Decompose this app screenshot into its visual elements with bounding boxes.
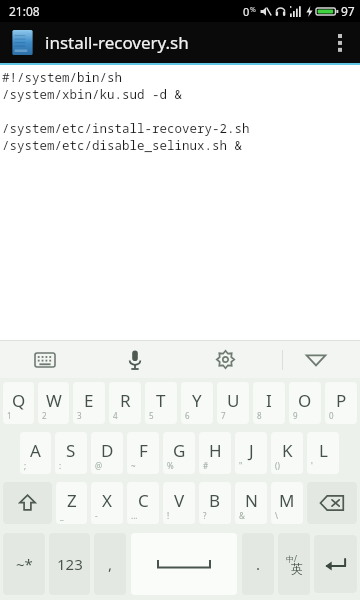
button[interactable]: Z: [56, 482, 87, 524]
button[interactable]: D: [91, 432, 123, 474]
button[interactable]: R: [109, 382, 141, 424]
staticText: 21:08: [9, 3, 40, 19]
staticText: L: [319, 439, 328, 462]
staticText: .: [256, 554, 261, 574]
button[interactable]: O: [289, 382, 321, 424]
staticText: P: [336, 389, 347, 412]
button[interactable]: More options: [320, 22, 360, 63]
staticText: U: [227, 389, 240, 412]
staticText: 9: [293, 410, 298, 421]
staticText: /system/etc/disable_selinux.sh &: [2, 137, 243, 154]
staticText: #!/system/bin/sh: [2, 69, 123, 86]
staticText: install-recovery.sh: [45, 31, 189, 54]
staticText: ?: [203, 510, 207, 521]
staticText: !: [167, 510, 170, 521]
staticText: -: [95, 510, 98, 521]
staticText: ...: [131, 510, 138, 521]
staticText: 1: [7, 410, 12, 421]
staticText: 7: [221, 410, 226, 421]
button[interactable]: Q: [3, 382, 34, 424]
button[interactable]: H: [199, 432, 231, 474]
button[interactable]: G: [163, 432, 195, 474]
staticText: (): [275, 460, 280, 471]
button[interactable]: T: [145, 382, 177, 424]
staticText: ~*: [16, 554, 33, 574]
button[interactable]: Keyboard layout: [0, 341, 90, 378]
button[interactable]: C: [127, 482, 159, 524]
staticText: 5: [149, 410, 154, 421]
staticText: ,: [108, 554, 113, 574]
button[interactable]: Backspace: [307, 482, 357, 524]
button[interactable]: M: [271, 482, 303, 524]
button[interactable]: E: [73, 382, 105, 424]
button[interactable]: Shift: [3, 482, 52, 524]
staticText: D: [101, 439, 114, 462]
button[interactable]: .: [242, 533, 274, 595]
staticText: T: [156, 389, 166, 412]
button[interactable]: 中/: [278, 533, 310, 595]
button[interactable]: Settings: [180, 341, 270, 378]
staticText: 123: [57, 554, 83, 574]
button[interactable]: ~*: [3, 533, 45, 595]
staticText: I: [266, 389, 272, 412]
button[interactable]: Enter: [314, 535, 357, 593]
staticText: S: [66, 439, 76, 462]
staticText: J: [249, 439, 254, 462]
staticText: 8: [257, 410, 262, 421]
button[interactable]: J: [235, 432, 267, 474]
staticText: 0: [243, 4, 250, 19]
staticText: Y: [192, 389, 202, 412]
button[interactable]: Voice input: [90, 341, 180, 378]
staticText: ;: [24, 460, 27, 471]
staticText: &: [239, 510, 245, 521]
staticText: V: [174, 489, 185, 512]
button[interactable]: I: [253, 382, 285, 424]
button[interactable]: ,: [94, 533, 126, 595]
staticText: 中/: [286, 553, 297, 564]
staticText: ~: [131, 460, 136, 471]
staticText: /system/etc/install-recovery-2.sh: [2, 120, 250, 137]
staticText: %: [167, 460, 174, 471]
staticText: 97: [341, 3, 355, 19]
staticText: 4: [113, 410, 118, 421]
button[interactable]: S: [55, 432, 87, 474]
button[interactable]: Space: [131, 533, 237, 595]
staticText: %: [250, 5, 256, 15]
button[interactable]: U: [217, 382, 249, 424]
button[interactable]: F: [127, 432, 159, 474]
staticText: M: [279, 489, 295, 512]
staticText: G: [173, 439, 186, 462]
button[interactable]: W: [38, 382, 69, 424]
staticText: O: [298, 389, 312, 412]
staticText: H: [209, 439, 222, 462]
button[interactable]: A: [20, 432, 51, 474]
staticText: ": [239, 460, 243, 471]
staticText: E: [84, 389, 94, 412]
staticText: 英: [291, 561, 303, 576]
button[interactable]: L: [307, 432, 339, 474]
staticText: #: [203, 460, 209, 471]
staticText: 0: [329, 410, 334, 421]
button[interactable]: Y: [181, 382, 213, 424]
staticText: X: [102, 489, 112, 512]
staticText: K: [282, 439, 293, 462]
button[interactable]: N: [235, 482, 267, 524]
button[interactable]: 123: [49, 533, 90, 595]
button[interactable]: V: [163, 482, 195, 524]
staticText: N: [245, 489, 258, 512]
button[interactable]: P: [325, 382, 357, 424]
staticText: 2: [42, 410, 47, 421]
staticText: 3: [77, 410, 82, 421]
button[interactable]: X: [91, 482, 123, 524]
staticText: C: [138, 489, 149, 512]
button[interactable]: Hide keyboard: [283, 341, 349, 378]
staticText: R: [120, 389, 131, 412]
staticText: Z: [67, 489, 77, 512]
staticText: /system/xbin/ku.sud -d &: [2, 86, 183, 103]
staticText: Q: [12, 389, 26, 412]
staticText: F: [139, 439, 148, 462]
button[interactable]: K: [271, 432, 303, 474]
button[interactable]: B: [199, 482, 231, 524]
staticText: W: [46, 389, 62, 412]
staticText: ': [311, 460, 313, 471]
